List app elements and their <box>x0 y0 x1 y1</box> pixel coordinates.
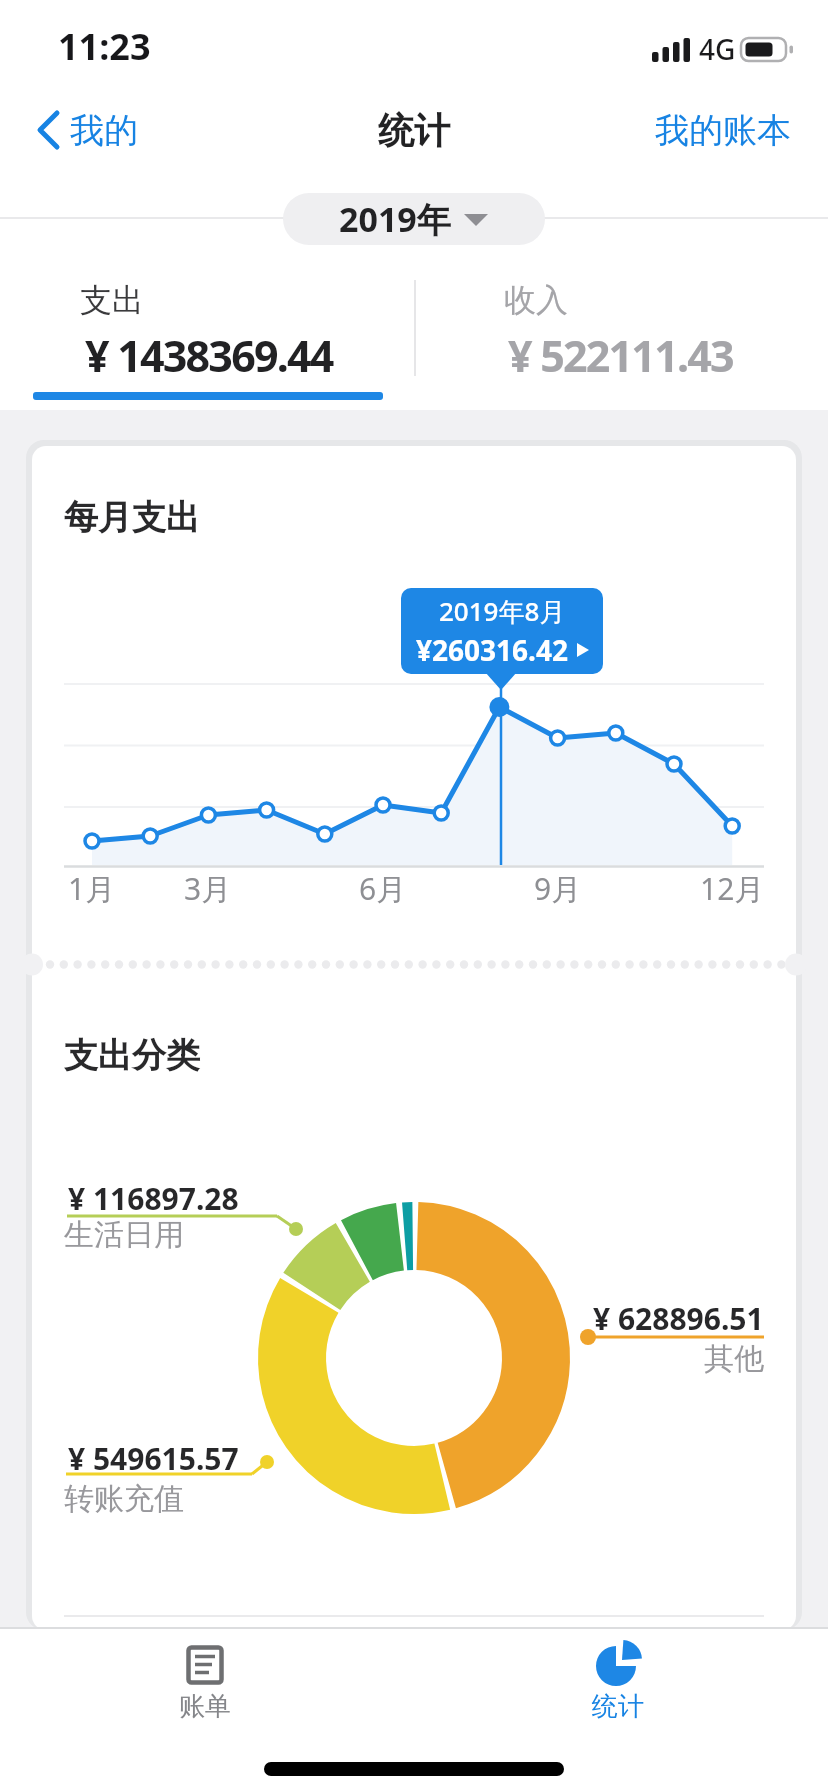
button[interactable] <box>414 270 828 410</box>
staticText: 2019年8月 <box>439 593 566 629</box>
staticText: ¥ 549615.57 <box>68 1438 239 1479</box>
staticText: ¥ 628896.51 <box>593 1298 764 1336</box>
staticText: 4G <box>699 30 736 68</box>
staticText: 3月 <box>184 868 232 908</box>
staticText: 统计 <box>378 108 450 153</box>
staticText: 2019年 <box>339 196 451 242</box>
staticText: 每月支出 <box>64 496 200 539</box>
staticText: 9月 <box>534 868 582 908</box>
staticText: 我的账本 <box>655 109 791 152</box>
staticText: 支出 <box>80 280 144 320</box>
button[interactable]: 我的 <box>36 106 138 154</box>
staticText: ¥ 1438369.44 <box>85 326 333 385</box>
staticText: ¥ 522111.43 <box>508 326 733 385</box>
button[interactable]: 2019年 <box>283 193 545 245</box>
staticText: 1月 <box>68 868 116 908</box>
staticText: 生活日用 <box>64 1216 184 1254</box>
button[interactable] <box>0 270 414 410</box>
staticText: 我的 <box>70 109 138 152</box>
staticText: 11:23 <box>58 22 151 71</box>
staticText: 统计 <box>592 1690 644 1723</box>
button[interactable]: 2019年8月 <box>401 588 603 674</box>
staticText: ¥ 116897.28 <box>68 1178 239 1219</box>
staticText: 12月 <box>700 868 765 908</box>
staticText: 收入 <box>504 280 568 320</box>
button[interactable]: 统计 <box>558 1642 678 1726</box>
staticText: 支出分类 <box>64 1034 200 1077</box>
staticText: 转账充值 <box>64 1480 184 1518</box>
button[interactable]: 账单 <box>145 1644 265 1728</box>
staticText: 其他 <box>704 1340 764 1378</box>
staticText: ¥260316.42 <box>416 631 569 669</box>
staticText: 账单 <box>179 1690 231 1723</box>
button[interactable]: 我的账本 <box>648 106 798 154</box>
staticText: 6月 <box>359 868 407 908</box>
